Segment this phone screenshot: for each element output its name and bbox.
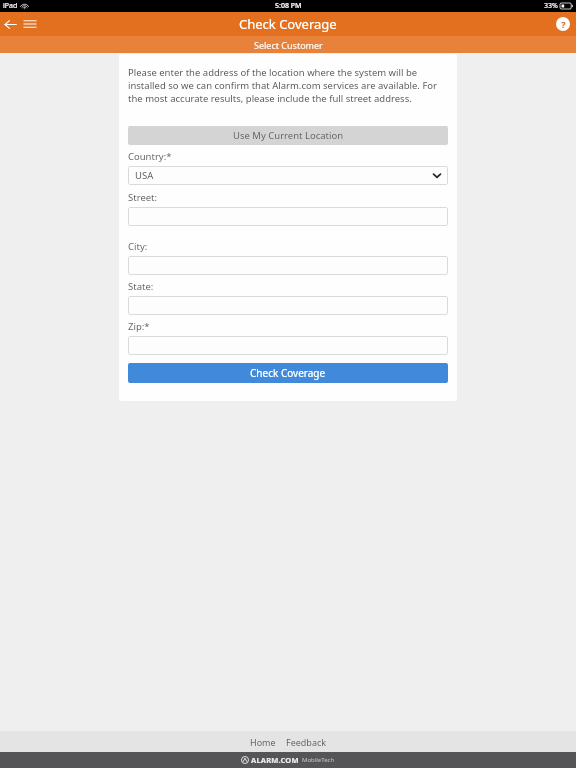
staticText: 5:08 PM xyxy=(275,1,302,11)
staticText: Feedback xyxy=(286,736,327,748)
staticText: 33% xyxy=(544,1,558,11)
button[interactable] xyxy=(128,296,448,315)
button[interactable]: Check Coverage xyxy=(128,363,448,383)
button[interactable]: USA xyxy=(128,166,448,185)
staticText: Check Coverage xyxy=(239,15,337,33)
button[interactable]: Menu xyxy=(20,14,40,34)
staticText: iPad xyxy=(3,1,18,11)
button[interactable] xyxy=(128,256,448,275)
staticText: ALARM.COM xyxy=(251,755,299,765)
staticText: Check Coverage xyxy=(250,366,326,380)
staticText: ? xyxy=(561,18,566,30)
staticText: Please enter the address of the location… xyxy=(128,66,448,105)
button[interactable]: Help xyxy=(554,15,572,33)
button[interactable]: Home xyxy=(246,733,280,751)
staticText: Street: xyxy=(128,191,158,204)
button[interactable]: Select Customer xyxy=(0,36,576,53)
button[interactable]: Back xyxy=(0,14,20,34)
staticText: Zip:* xyxy=(128,320,150,333)
button[interactable] xyxy=(128,207,448,226)
staticText: Use My Current Location xyxy=(233,129,344,142)
button[interactable]: Use My Current Location xyxy=(128,126,448,145)
button[interactable]: Feedback xyxy=(282,733,331,751)
staticText: USA xyxy=(135,169,154,182)
button[interactable] xyxy=(128,336,448,355)
staticText: Country:* xyxy=(128,150,172,163)
staticText: State: xyxy=(128,280,154,293)
staticText: Select Customer xyxy=(254,39,323,51)
staticText: MobileTech xyxy=(302,756,335,764)
staticText: City: xyxy=(128,240,148,253)
staticText: Home xyxy=(250,736,276,748)
